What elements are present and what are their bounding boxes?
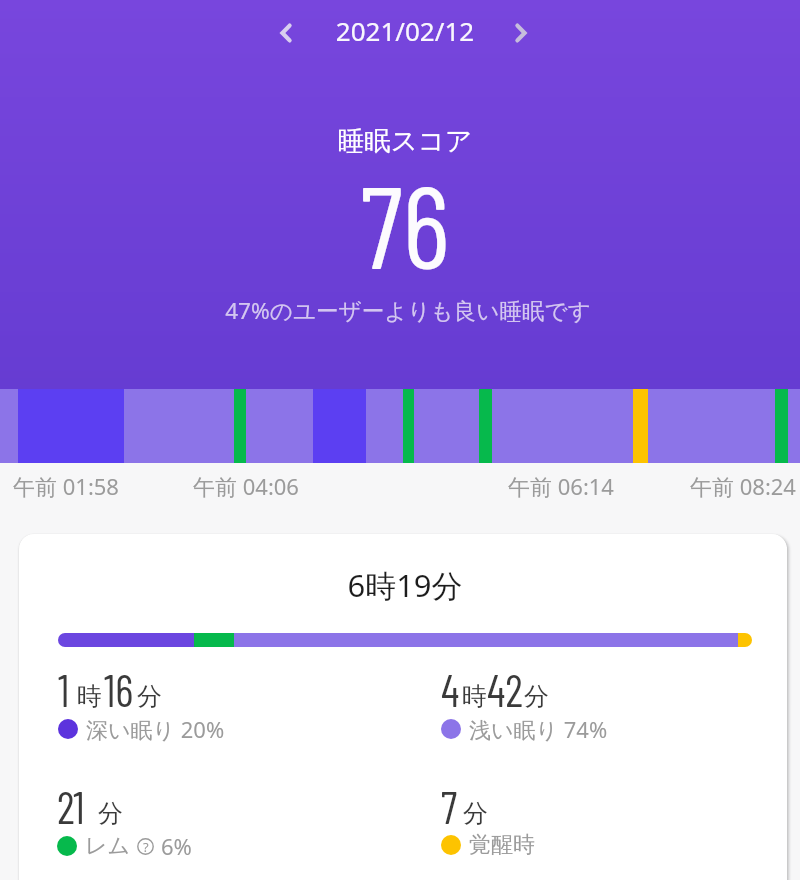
staticText: 深い眠り 20% <box>86 714 225 744</box>
staticText: 6時19分 <box>21 564 789 606</box>
staticText: 76 <box>5 154 800 292</box>
staticText: 時 <box>462 681 487 712</box>
button[interactable]: 4 <box>441 663 608 746</box>
button[interactable]: 7 <box>441 780 535 861</box>
staticText: 睡眠スコア <box>5 124 800 157</box>
staticText: ? <box>143 838 149 855</box>
button[interactable]: 21 <box>57 780 192 863</box>
staticText: 6% <box>161 831 192 861</box>
staticText: 分 <box>463 798 488 829</box>
staticText: 分 <box>524 681 549 712</box>
staticText: 47%のユーザーよりも良い睡眠です <box>8 295 800 326</box>
button[interactable]: Previous day <box>263 10 309 56</box>
staticText: 時 <box>77 681 102 712</box>
staticText: 浅い眠り 74% <box>469 714 608 744</box>
staticText: 午前 04:06 <box>193 471 299 501</box>
staticText: 4 <box>441 663 460 716</box>
staticText: 7 <box>441 780 458 833</box>
staticText: 分 <box>137 681 162 712</box>
staticText: 午前 01:58 <box>13 471 119 501</box>
staticText: 21 <box>57 780 85 833</box>
button[interactable]: 1 <box>58 663 225 746</box>
staticText: 分 <box>98 798 123 829</box>
button[interactable]: Next day <box>498 10 544 56</box>
staticText: 42 <box>487 663 523 716</box>
staticText: レム <box>85 832 131 860</box>
staticText: 2021/02/12 <box>5 13 800 48</box>
staticText: 午前 08:24 <box>690 471 796 501</box>
staticText: 覚醒時 <box>469 831 535 859</box>
button[interactable]: About REM sleep <box>137 838 154 855</box>
staticText: 1 <box>58 663 70 716</box>
staticText: 16 <box>104 663 134 716</box>
staticText: 午前 06:14 <box>508 471 614 501</box>
